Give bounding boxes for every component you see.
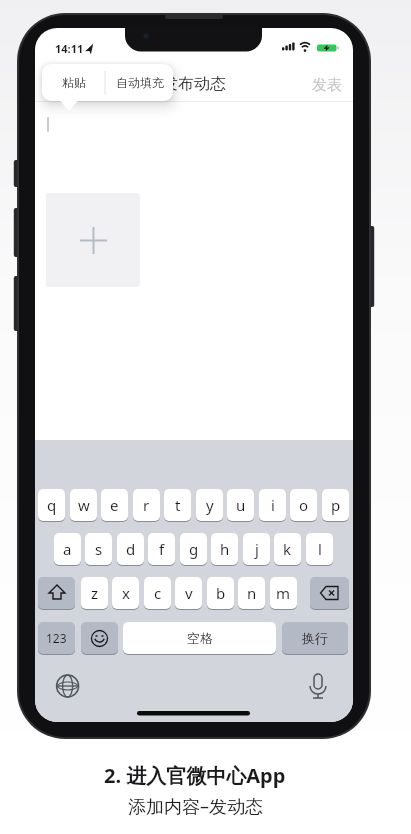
button[interactable]: v xyxy=(175,577,202,609)
button[interactable]: q xyxy=(38,489,65,521)
button[interactable] xyxy=(310,577,349,609)
staticText: r xyxy=(143,495,150,515)
button[interactable] xyxy=(38,577,75,609)
button[interactable]: c xyxy=(144,577,171,609)
staticText: 空格 xyxy=(187,630,213,646)
staticText: o xyxy=(299,495,309,515)
button[interactable]: 发表 xyxy=(312,76,342,95)
staticText: w xyxy=(78,495,90,515)
staticText: 123 xyxy=(46,630,67,646)
staticText: 14:11 xyxy=(55,41,84,56)
button[interactable]: x xyxy=(112,577,139,609)
button[interactable] xyxy=(81,622,118,654)
staticText: 发布动态 xyxy=(162,74,226,94)
button[interactable]: 123 xyxy=(38,622,75,654)
staticText: p xyxy=(331,495,341,515)
staticText: 添加内容–发动态 xyxy=(128,794,263,819)
staticText: q xyxy=(47,495,57,515)
staticText: m xyxy=(276,583,291,603)
button[interactable]: t xyxy=(164,489,191,521)
staticText: y xyxy=(206,495,214,515)
button[interactable]: w xyxy=(70,489,97,521)
button[interactable]: y xyxy=(196,489,223,521)
button[interactable]: 自动填充 xyxy=(106,64,173,101)
staticText: 2. 进入官微中心App xyxy=(104,762,286,789)
button[interactable]: u xyxy=(227,489,254,521)
staticText: f xyxy=(159,539,165,559)
button[interactable]: k xyxy=(274,533,301,565)
button[interactable]: b xyxy=(207,577,234,609)
button[interactable]: l xyxy=(306,533,333,565)
button[interactable]: i xyxy=(259,489,286,521)
staticText: e xyxy=(110,495,119,515)
button[interactable]: z xyxy=(81,577,108,609)
staticText: 发表 xyxy=(312,76,342,95)
staticText: c xyxy=(154,583,162,603)
staticText: k xyxy=(283,539,292,559)
staticText: x xyxy=(122,583,130,603)
button[interactable]: m xyxy=(270,577,297,609)
staticText: 粘贴 xyxy=(62,75,86,90)
button[interactable]: f xyxy=(148,533,175,565)
staticText: n xyxy=(247,583,257,603)
staticText: a xyxy=(63,539,72,559)
button[interactable]: 粘贴 xyxy=(42,64,105,101)
button[interactable]: p xyxy=(322,489,349,521)
button[interactable]: j xyxy=(243,533,270,565)
button[interactable]: 空格 xyxy=(123,622,276,654)
button[interactable]: s xyxy=(85,533,112,565)
staticText: j xyxy=(255,539,259,559)
button[interactable]: r xyxy=(133,489,160,521)
staticText: l xyxy=(318,539,322,559)
button[interactable]: o xyxy=(290,489,317,521)
button[interactable]: e xyxy=(101,489,128,521)
button[interactable]: n xyxy=(238,577,265,609)
staticText: d xyxy=(126,539,136,559)
staticText: b xyxy=(216,583,226,603)
staticText: i xyxy=(271,495,275,515)
staticText: 换行 xyxy=(302,630,328,646)
staticText: u xyxy=(236,495,246,515)
button[interactable]: d xyxy=(117,533,144,565)
button[interactable]: a xyxy=(54,533,81,565)
staticText: g xyxy=(189,539,199,559)
staticText: v xyxy=(185,583,193,603)
staticText: h xyxy=(220,539,230,559)
staticText: t xyxy=(175,495,181,515)
button[interactable]: 换行 xyxy=(282,622,348,654)
staticText: s xyxy=(95,539,103,559)
button[interactable]: g xyxy=(180,533,207,565)
staticText: 自动填充 xyxy=(116,75,164,90)
button[interactable] xyxy=(46,193,140,287)
button[interactable]: h xyxy=(211,533,238,565)
staticText: z xyxy=(91,583,99,603)
